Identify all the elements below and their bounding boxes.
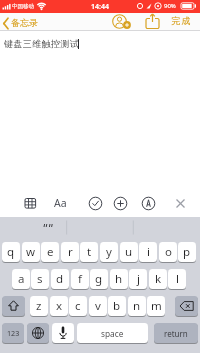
button[interactable]: q: [2, 242, 20, 262]
button[interactable]: [144, 13, 162, 30]
button[interactable]: [87, 195, 104, 212]
button[interactable]: n: [128, 296, 146, 316]
staticText: return: [164, 328, 188, 339]
button[interactable]: [175, 296, 198, 316]
staticText: i: [147, 244, 150, 260]
button[interactable]: k: [149, 269, 167, 289]
staticText: Aa: [54, 196, 67, 210]
button[interactable]: l: [168, 269, 186, 289]
button[interactable]: 备忘录: [1, 15, 43, 29]
button[interactable]: f: [71, 269, 89, 289]
button[interactable]: p: [178, 242, 196, 262]
staticText: k: [155, 271, 162, 287]
button[interactable]: h: [110, 269, 128, 289]
staticText: p: [183, 244, 191, 260]
staticText: b: [113, 298, 121, 314]
staticText: 备忘录: [11, 17, 38, 28]
button[interactable]: space: [77, 323, 148, 343]
staticText: g: [95, 271, 103, 287]
staticText: 中国移动: [12, 3, 34, 10]
staticText: 14:44: [91, 2, 109, 12]
staticText: n: [133, 298, 141, 314]
button[interactable]: e: [41, 242, 59, 262]
button[interactable]: w: [22, 242, 40, 262]
button[interactable]: u: [120, 242, 138, 262]
staticText: 123: [7, 328, 20, 338]
staticText: x: [56, 298, 63, 314]
staticText: h: [115, 271, 123, 287]
button[interactable]: c: [69, 296, 87, 316]
staticText: t: [87, 244, 92, 260]
staticText: m: [151, 298, 162, 314]
button[interactable]: t: [80, 242, 98, 262]
button[interactable]: Aa: [53, 195, 71, 212]
staticText: space: [101, 328, 124, 339]
staticText: 完成: [171, 15, 191, 26]
button[interactable]: o: [159, 242, 177, 262]
staticText: o: [165, 244, 172, 260]
staticText: v: [95, 298, 101, 314]
button[interactable]: m: [147, 296, 165, 316]
button[interactable]: x: [50, 296, 68, 316]
staticText: j: [137, 271, 140, 287]
button[interactable]: [109, 13, 133, 30]
button[interactable]: 完成: [167, 14, 197, 29]
staticText: w: [26, 244, 36, 260]
button[interactable]: j: [129, 269, 147, 289]
staticText: z: [36, 298, 42, 314]
button[interactable]: [172, 195, 189, 212]
button[interactable]: return: [154, 323, 198, 343]
staticText: 90%: [164, 2, 176, 10]
button[interactable]: r: [61, 242, 79, 262]
button[interactable]: b: [108, 296, 126, 316]
button[interactable]: z: [30, 296, 48, 316]
staticText: r: [68, 244, 73, 260]
staticText: a: [18, 271, 25, 287]
button[interactable]: s: [31, 269, 49, 289]
staticText: d: [56, 271, 64, 287]
staticText: c: [75, 298, 81, 314]
button[interactable]: a: [12, 269, 30, 289]
button[interactable]: [22, 195, 39, 212]
staticText: e: [47, 244, 54, 260]
staticText: s: [37, 271, 43, 287]
button[interactable]: [27, 323, 49, 343]
staticText: 键盘三维触控测试: [4, 38, 80, 49]
staticText: y: [106, 244, 112, 260]
button[interactable]: v: [89, 296, 107, 316]
button[interactable]: [112, 195, 129, 212]
button[interactable]: 123: [2, 323, 24, 343]
staticText: u: [125, 244, 133, 260]
button[interactable]: [52, 323, 74, 343]
staticText: f: [78, 271, 82, 287]
button[interactable]: y: [100, 242, 118, 262]
button[interactable]: g: [90, 269, 108, 289]
staticText: l: [176, 271, 179, 287]
button[interactable]: d: [51, 269, 69, 289]
button[interactable]: i: [139, 242, 157, 262]
staticText: q: [7, 244, 15, 260]
button[interactable]: [2, 296, 25, 316]
button[interactable]: [140, 195, 157, 212]
